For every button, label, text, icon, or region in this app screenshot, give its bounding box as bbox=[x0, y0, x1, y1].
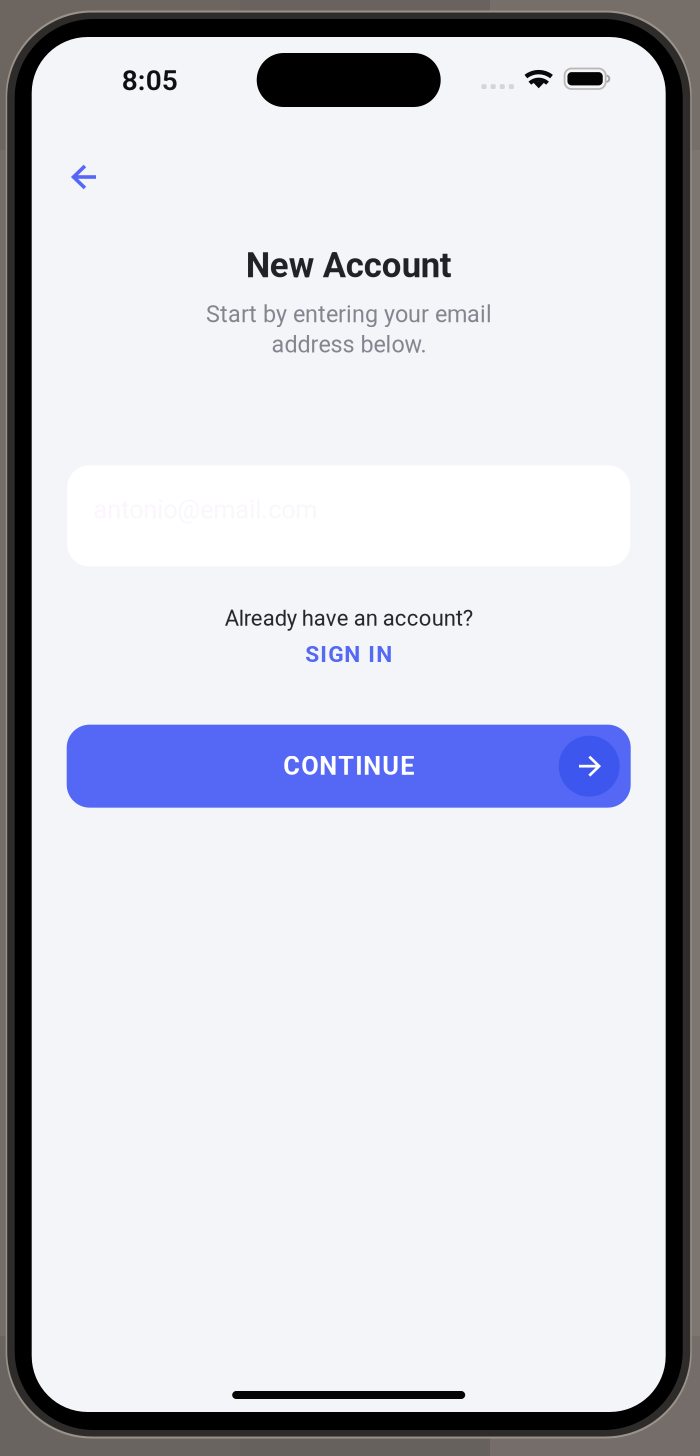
button[interactable]: SIGN IN bbox=[289, 636, 408, 673]
staticText: CONTINUE bbox=[283, 751, 414, 781]
staticText: SIGN IN bbox=[305, 641, 392, 668]
staticText: antonio@email.com bbox=[93, 495, 317, 525]
staticText: Already have an account? bbox=[225, 605, 473, 631]
staticText: 8:05 bbox=[122, 64, 178, 97]
button[interactable]: Back bbox=[58, 150, 112, 204]
button[interactable]: CONTINUE bbox=[67, 725, 631, 808]
staticText: Start by entering your email address bel… bbox=[206, 301, 492, 358]
staticText: New Account bbox=[246, 245, 452, 286]
